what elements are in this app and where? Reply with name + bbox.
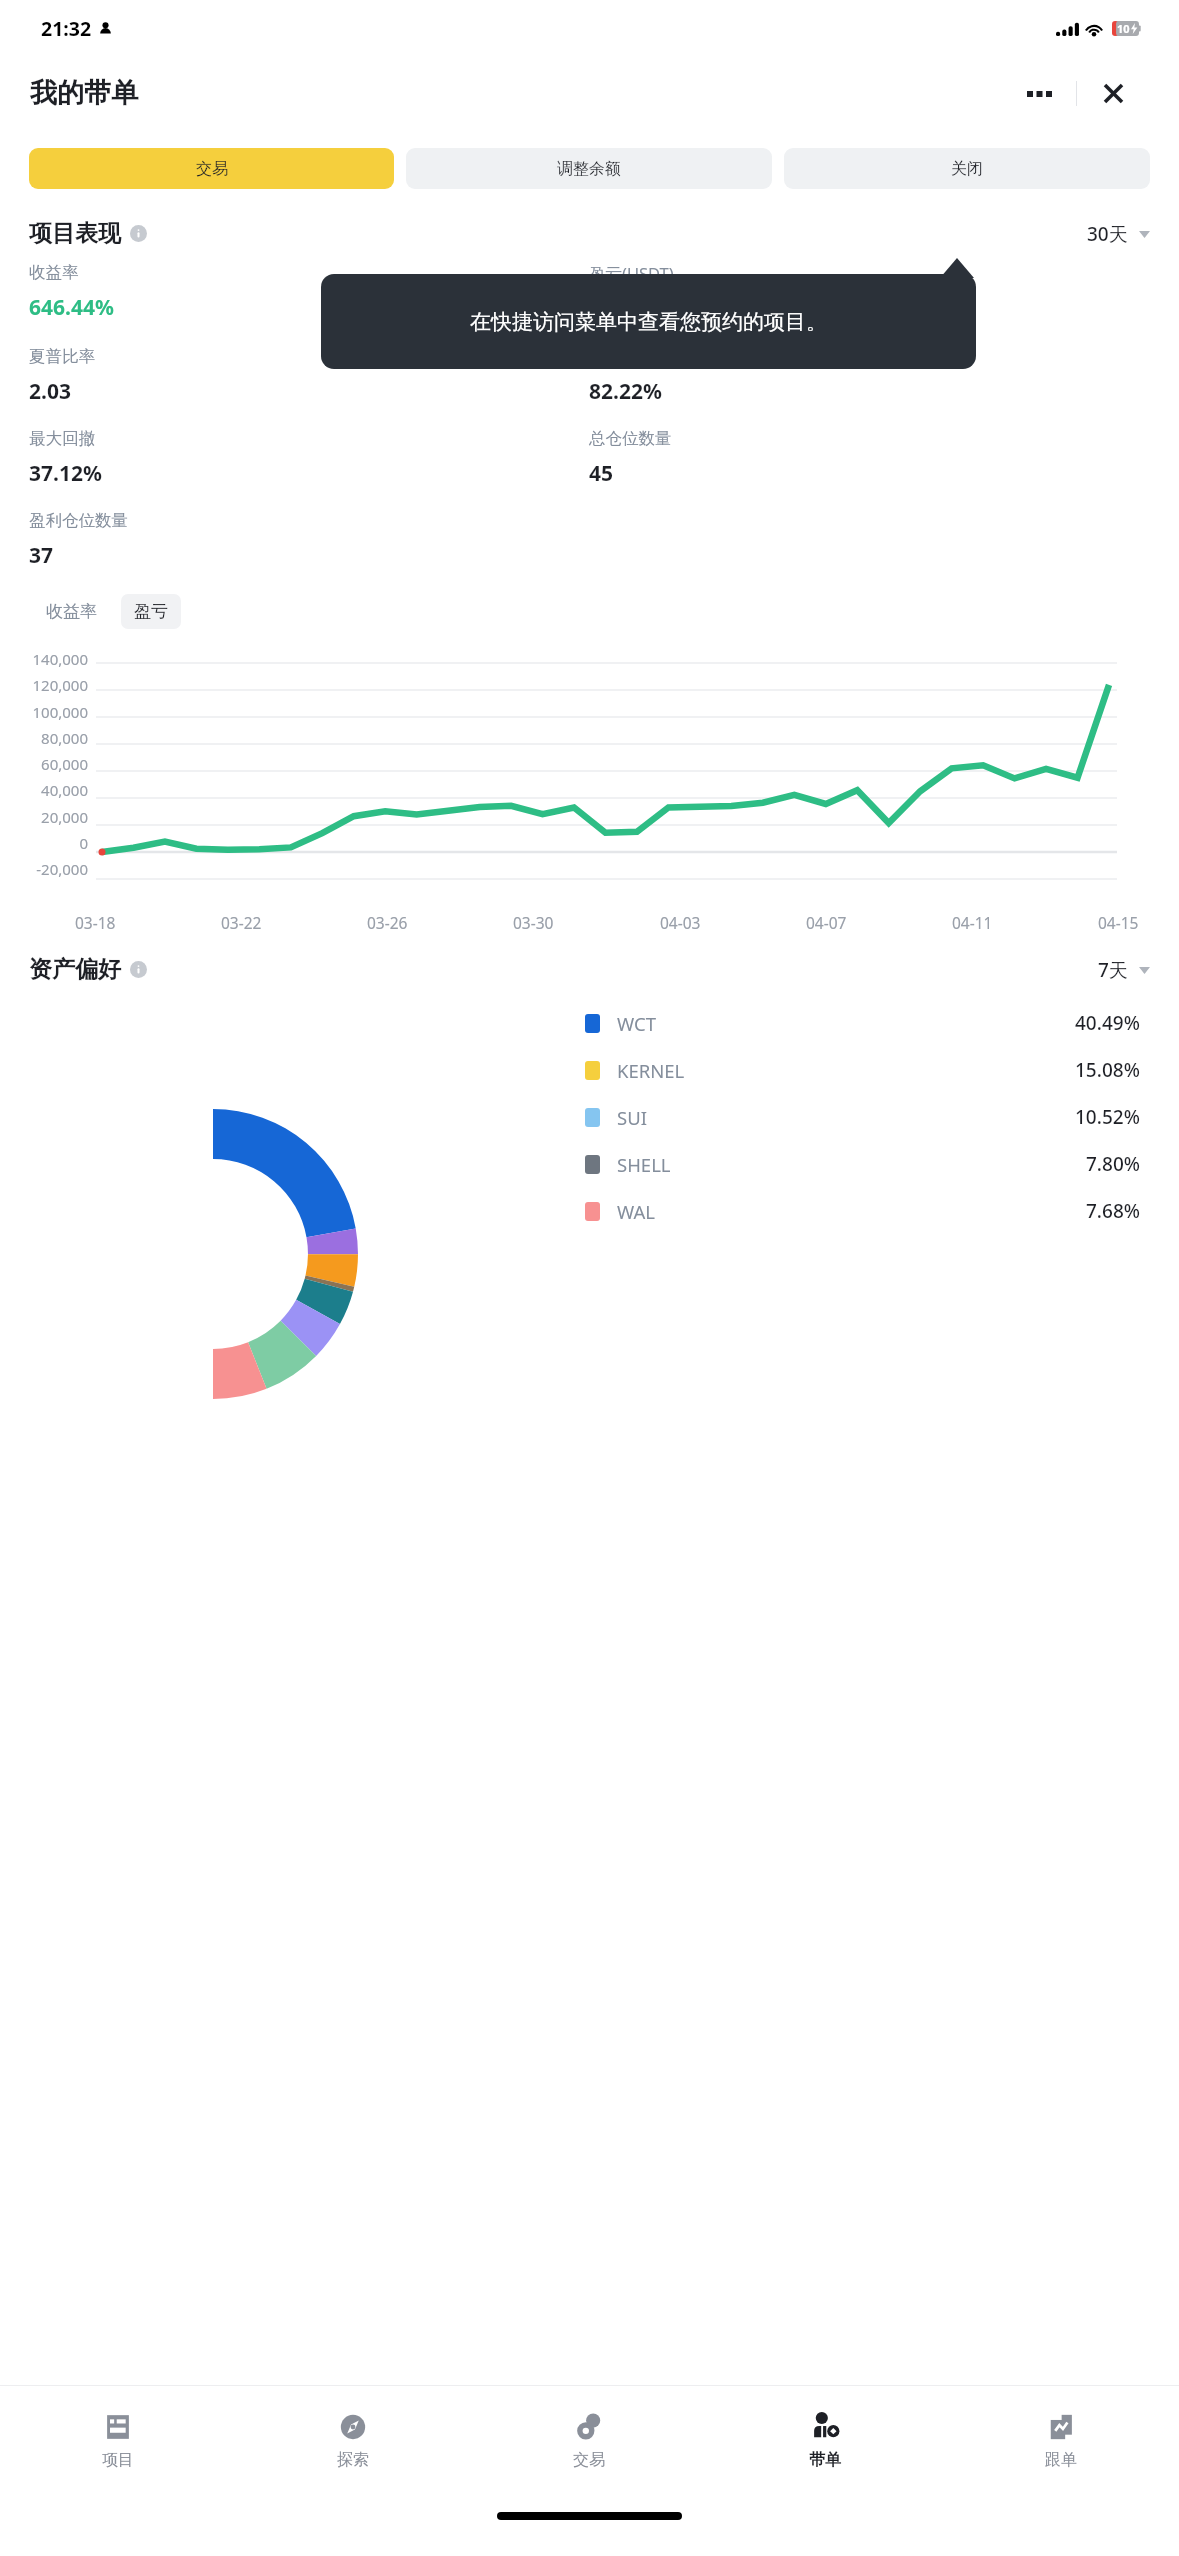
staticText: 120,000 [6,675,88,695]
button[interactable]: 带单 [707,2386,943,2494]
staticText: KERNEL [617,1058,685,1083]
staticText: 收益率 [46,601,97,622]
button[interactable]: 跟单 [943,2386,1179,2494]
staticText: 37 [29,541,54,570]
staticText: -20,000 [6,859,88,879]
staticText: 盈亏 [134,601,168,622]
staticText: 调整余额 [557,159,621,179]
staticText: 03-26 [367,912,408,933]
staticText: WAL [617,1199,655,1224]
staticText: 82.22% [589,377,662,406]
staticText: 盈利仓位数量 [29,510,128,531]
staticText: 140,000 [6,649,88,669]
staticText: 项目 [102,2450,134,2470]
staticText: 我的带单 [30,76,138,110]
staticText: 夏普比率 [29,346,95,367]
staticText: WCT [617,1011,656,1036]
staticText: 0 [6,833,88,853]
staticText: 项目表现 [29,219,121,248]
staticText: 7天 [1098,957,1128,983]
staticText: 03-30 [513,912,554,933]
staticText: SUI [617,1105,647,1130]
staticText: 带单 [809,2450,841,2470]
staticText: 80,000 [6,728,88,748]
staticText: 04-07 [806,912,847,933]
button[interactable]: 7天 [1098,957,1150,983]
staticText: 10 [1117,21,1130,36]
button[interactable]: KERNEL [585,1057,1140,1083]
staticText: 646.44% [29,293,114,322]
button[interactable]: Close [1077,69,1150,118]
staticText: 资产偏好 [29,955,121,984]
button[interactable]: WCT [585,1010,1140,1036]
button[interactable]: 收益率 [36,594,107,629]
staticText: 30天 [1087,221,1128,247]
staticText: 在快捷访问菜单中查看您预约的项目。 [470,309,827,335]
staticText: 7.80% [1086,1151,1140,1177]
button[interactable]: 30天 [1087,221,1150,247]
staticText: 最大回撤 [29,428,95,449]
staticText: 37.12% [29,459,102,488]
staticText: 21:32 [41,15,92,42]
button[interactable]: 盈亏 [121,594,181,629]
staticText: 40,000 [6,780,88,800]
staticText: 20,000 [6,807,88,827]
button[interactable]: SUI [585,1104,1140,1130]
button[interactable]: More options [1003,69,1076,118]
staticText: 盈亏(USDT) [589,262,674,285]
staticText: 收益率 [29,262,79,283]
button[interactable]: 调整余额 [406,148,772,189]
staticText: 100,000 [6,702,88,722]
button[interactable]: SHELL [585,1151,1140,1177]
staticText: 总仓位数量 [589,428,672,449]
button[interactable]: 关闭 [784,148,1150,189]
staticText: 15.08% [1075,1057,1140,1083]
staticText: 交易 [573,2450,605,2470]
staticText: 04-03 [660,912,701,933]
staticText: 7.68% [1086,1198,1140,1224]
staticText: 交易 [196,159,228,179]
staticText: 2.03 [29,377,71,406]
staticText: 关闭 [951,159,983,179]
staticText: 60,000 [6,754,88,774]
button[interactable]: 项目 [0,2386,235,2494]
staticText: 45 [589,459,614,488]
staticText: 10.52% [1075,1104,1140,1130]
staticText: SHELL [617,1152,671,1177]
staticText: 04-15 [1098,912,1139,933]
staticText: 探索 [337,2450,369,2470]
staticText: 03-18 [75,912,116,933]
button[interactable]: 交易 [471,2386,707,2494]
button[interactable]: WAL [585,1198,1140,1224]
staticText: 跟单 [1045,2450,1077,2470]
staticText: 40.49% [1075,1010,1140,1036]
button[interactable]: 探索 [235,2386,471,2494]
staticText: 03-22 [221,912,262,933]
button[interactable]: 交易 [29,148,394,189]
staticText: 04-11 [952,912,993,933]
staticText: +124776.37 [589,295,704,324]
